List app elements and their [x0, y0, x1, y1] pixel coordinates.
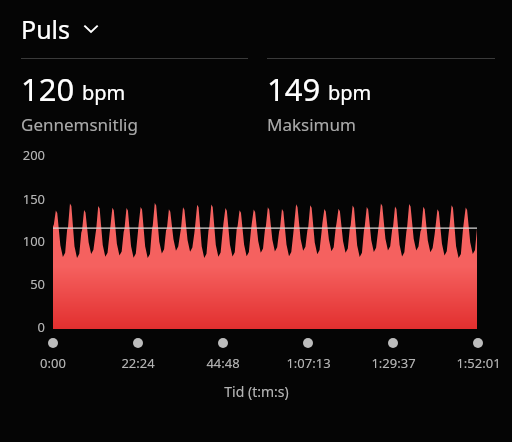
staticText: 44:48 — [206, 354, 240, 372]
staticText: 0 — [37, 318, 45, 336]
staticText: 149 — [267, 68, 321, 110]
staticText: 50 — [30, 275, 45, 293]
staticText: Tid (t:m:s) — [224, 382, 289, 401]
button[interactable]: Puls — [21, 10, 109, 48]
staticText: Gennemsnitlig — [21, 113, 138, 136]
staticText: 22:24 — [121, 354, 155, 372]
staticText: 120 — [21, 68, 75, 110]
other: Expand heart rate — [81, 19, 101, 39]
staticText: Puls — [21, 12, 71, 46]
staticText: 200 — [22, 146, 45, 164]
staticText: 1:29:37 — [371, 354, 416, 372]
staticText: Maksimum — [267, 113, 356, 136]
staticText: 150 — [22, 190, 45, 208]
staticText: 100 — [22, 232, 45, 250]
staticText: 0:00 — [40, 354, 66, 372]
staticText: 1:52:01 — [456, 354, 501, 372]
staticText: bpm — [328, 79, 372, 106]
staticText: 1:07:13 — [286, 354, 331, 372]
staticText: bpm — [82, 79, 126, 106]
